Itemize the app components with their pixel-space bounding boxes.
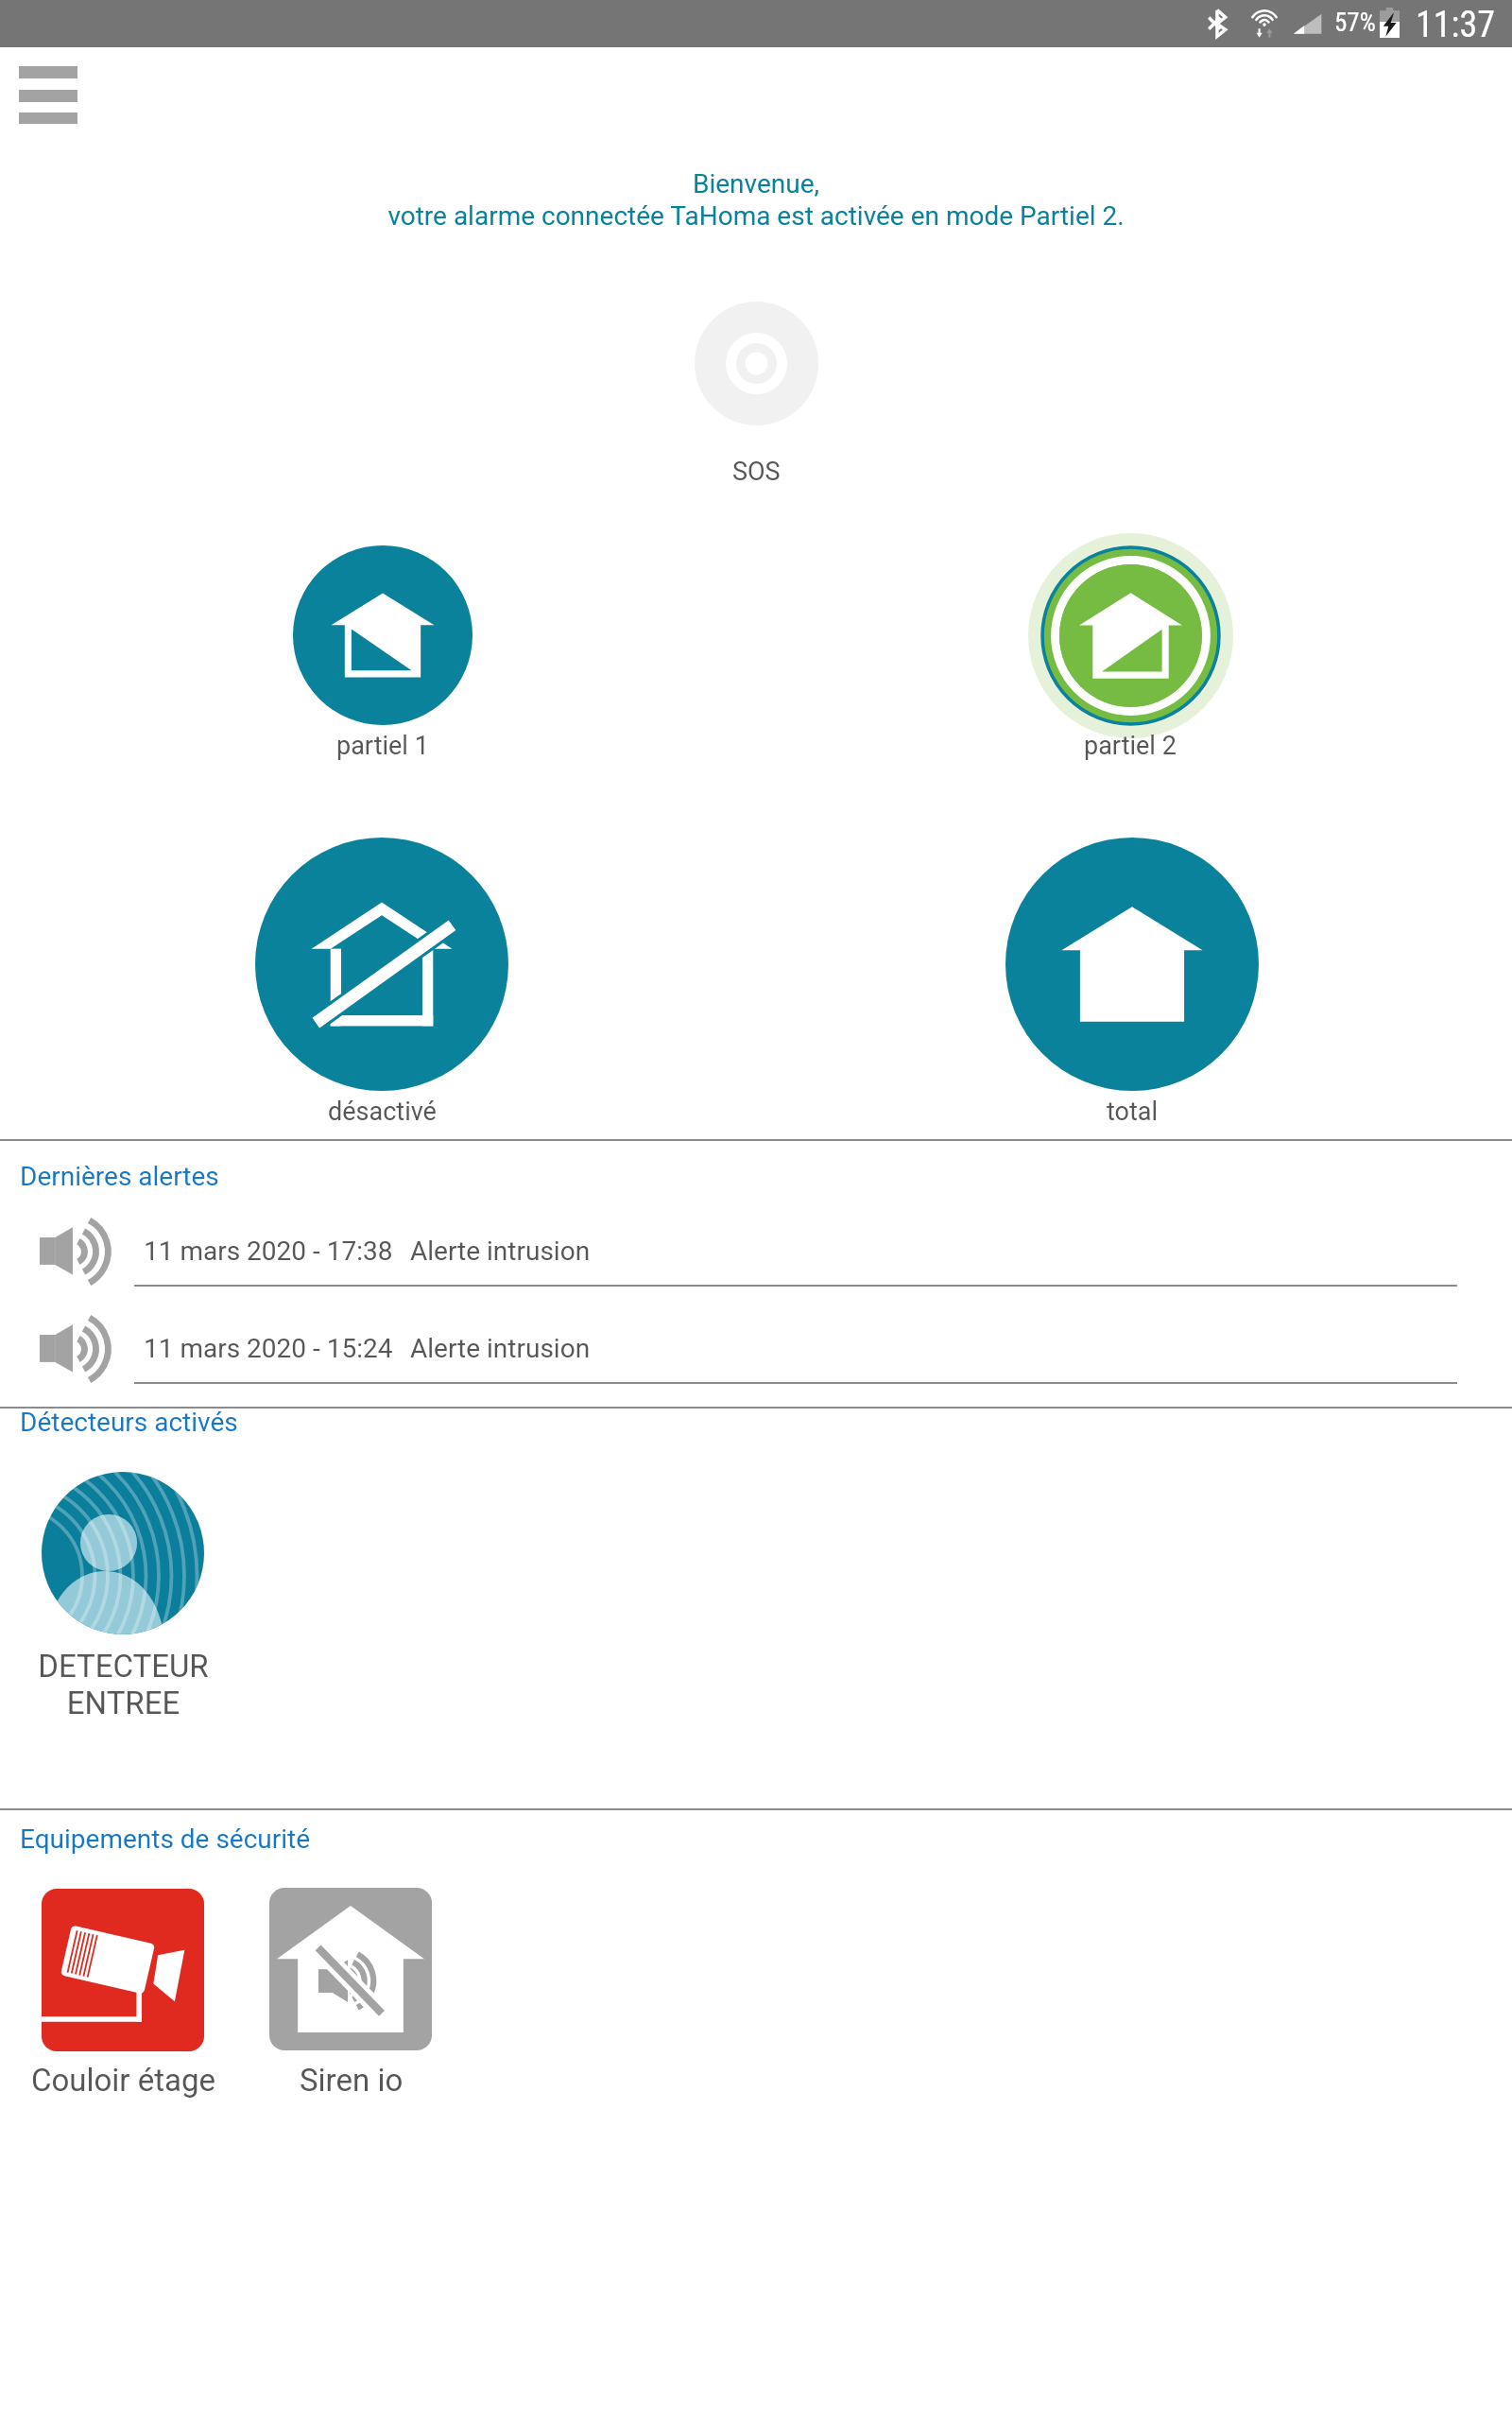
button[interactable]: Couloir étage: [0, 2062, 313, 2099]
button[interactable]: SOS: [567, 457, 945, 487]
button[interactable]: partiel 1: [293, 545, 472, 725]
staticText: partiel 1: [336, 731, 429, 761]
staticText: 57%: [1334, 8, 1376, 38]
staticText: Equipements de sécurité: [20, 1824, 311, 1855]
staticText: Siren io: [300, 2062, 404, 2099]
staticText: 11 mars 2020 - 17:38: [144, 1236, 393, 1267]
staticText: Couloir étage: [31, 2062, 216, 2099]
button[interactable]: partiel 2: [1028, 533, 1233, 738]
staticText: 11:37: [1416, 4, 1495, 46]
button[interactable]: Menu: [19, 66, 77, 124]
button[interactable]: SOS: [695, 302, 818, 425]
staticText: 11 mars 2020 - 15:24: [144, 1333, 393, 1364]
staticText: SOS: [732, 457, 781, 487]
staticText: partiel 2: [1084, 731, 1177, 761]
staticText: désactivé: [328, 1097, 437, 1127]
staticText: DETECTEUR ENTREE: [38, 1648, 209, 1721]
button[interactable]: Couloir étage: [42, 1889, 204, 2051]
button[interactable]: DETECTEUR ENTREE: [42, 1472, 204, 1634]
button[interactable]: total: [1005, 838, 1259, 1091]
staticText: Détecteurs activés: [20, 1407, 238, 1438]
button[interactable]: total: [943, 1097, 1321, 1127]
button[interactable]: désactivé: [255, 838, 508, 1091]
staticText: total: [1107, 1097, 1159, 1127]
button[interactable]: DETECTEUR ENTREE: [0, 1648, 312, 1721]
button[interactable]: désactivé: [193, 1097, 571, 1127]
staticText: Alerte intrusion: [410, 1333, 591, 1364]
button[interactable]: Siren io: [269, 1888, 432, 2050]
button[interactable]: partiel 1: [194, 731, 572, 761]
button[interactable]: partiel 2: [941, 731, 1319, 761]
staticText: Bienvenue, votre alarme connectée TaHoma…: [387, 168, 1125, 232]
button[interactable]: 11 mars 2020 - 15:24: [0, 1312, 1512, 1409]
button[interactable]: Siren io: [163, 2062, 541, 2099]
button[interactable]: 11 mars 2020 - 17:38: [0, 1215, 1512, 1312]
staticText: Dernières alertes: [20, 1161, 219, 1192]
staticText: Alerte intrusion: [410, 1236, 591, 1267]
